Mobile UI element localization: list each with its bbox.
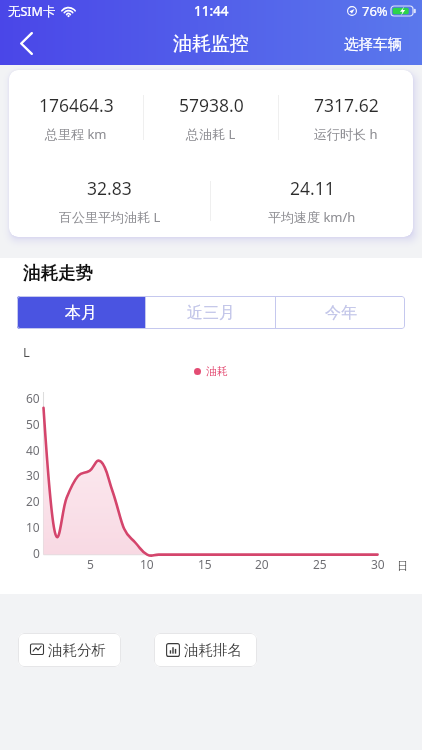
- staticText: 选择车辆: [344, 35, 402, 53]
- staticText: 76%: [362, 2, 388, 20]
- staticText: 15: [198, 556, 212, 571]
- staticText: 今年: [325, 303, 357, 323]
- button[interactable]: Back: [4, 22, 48, 65]
- staticText: 176464.3: [39, 93, 114, 117]
- staticText: 30: [371, 556, 385, 571]
- staticText: 10: [26, 519, 40, 535]
- staticText: 近三月: [187, 303, 235, 323]
- staticText: 10: [140, 556, 154, 571]
- staticText: 60: [26, 390, 40, 406]
- staticText: 油耗分析: [48, 641, 106, 659]
- staticText: 7317.62: [314, 93, 379, 117]
- button[interactable]: 近三月: [146, 296, 275, 329]
- staticText: 11:44: [194, 2, 229, 20]
- staticText: 0: [33, 545, 40, 561]
- staticText: 油耗排名: [184, 641, 242, 659]
- staticText: 日: [397, 559, 408, 573]
- staticText: L: [23, 343, 30, 361]
- staticText: 运行时长 h: [314, 125, 378, 143]
- staticText: 24.11: [290, 176, 335, 200]
- button[interactable]: 选择车辆: [332, 26, 422, 62]
- staticText: 总油耗 L: [186, 125, 236, 143]
- staticText: 5: [87, 556, 94, 571]
- button[interactable]: 今年: [276, 296, 405, 329]
- staticText: 平均速度 km/h: [268, 208, 356, 226]
- staticText: 50: [26, 416, 40, 432]
- staticText: 百公里平均油耗 L: [59, 208, 161, 226]
- button[interactable]: 本月: [17, 296, 145, 329]
- staticText: 20: [255, 556, 269, 571]
- staticText: 油耗: [206, 364, 228, 378]
- staticText: 总里程 km: [45, 125, 107, 143]
- staticText: 无SIM卡: [8, 3, 56, 20]
- staticText: 32.83: [87, 176, 132, 200]
- staticText: 油耗监控: [173, 32, 249, 56]
- staticText: 油耗走势: [23, 262, 93, 284]
- staticText: 40: [26, 442, 40, 458]
- staticText: 30: [26, 467, 40, 483]
- staticText: 25: [313, 556, 327, 571]
- staticText: 本月: [65, 303, 97, 323]
- button[interactable]: 油耗分析: [18, 633, 121, 667]
- staticText: 20: [26, 493, 40, 509]
- staticText: 57938.0: [179, 93, 244, 117]
- button[interactable]: 油耗排名: [154, 633, 257, 667]
